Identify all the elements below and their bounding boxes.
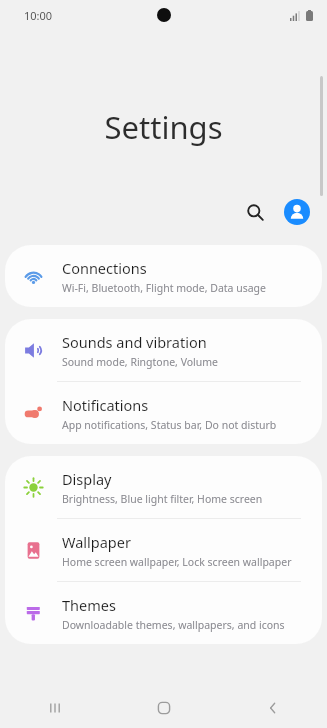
staticText: Sounds and vibration xyxy=(62,332,207,352)
button[interactable]: Wallpaper xyxy=(5,519,322,581)
button[interactable]: Back xyxy=(218,688,327,728)
staticText: 10:00 xyxy=(24,8,53,23)
button[interactable]: Recent apps xyxy=(0,688,109,728)
staticText: Downloadable themes, wallpapers, and ico… xyxy=(62,618,285,632)
staticText: Wi-Fi, Bluetooth, Flight mode, Data usag… xyxy=(62,281,267,295)
button[interactable]: Search xyxy=(239,196,271,228)
button[interactable]: Themes xyxy=(5,582,322,644)
staticText: Wallpaper xyxy=(62,532,131,552)
button[interactable]: Home xyxy=(109,688,218,728)
staticText: Notifications xyxy=(62,395,149,415)
button[interactable]: Sounds and vibration xyxy=(5,319,322,381)
staticText: Settings xyxy=(0,106,327,148)
staticText: Connections xyxy=(62,258,147,278)
staticText: Sound mode, Ringtone, Volume xyxy=(62,355,219,369)
staticText: Home screen wallpaper, Lock screen wallp… xyxy=(62,555,292,569)
staticText: App notifications, Status bar, Do not di… xyxy=(62,418,277,432)
button[interactable]: Connections xyxy=(5,245,322,307)
button[interactable]: Display xyxy=(5,456,322,518)
button[interactable]: Account xyxy=(284,199,310,225)
staticText: Brightness, Blue light filter, Home scre… xyxy=(62,492,263,506)
staticText: Themes xyxy=(62,595,116,615)
button[interactable]: Notifications xyxy=(5,382,322,444)
staticText: Display xyxy=(62,469,112,489)
